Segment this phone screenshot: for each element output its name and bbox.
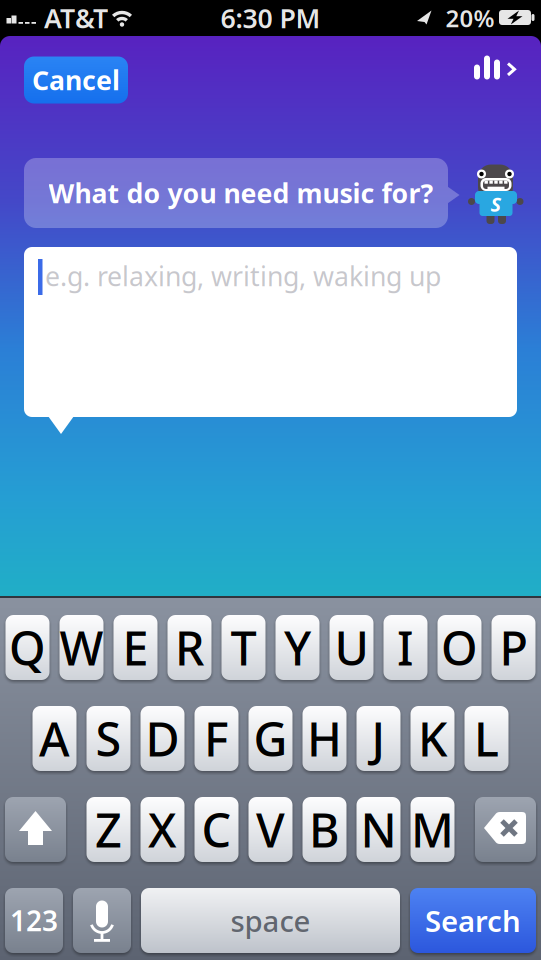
staticText: S: [490, 191, 501, 217]
staticText: D: [145, 707, 179, 769]
button[interactable]: Dictate: [73, 888, 131, 953]
button[interactable]: U: [329, 615, 373, 680]
staticText: space: [230, 901, 310, 940]
button[interactable]: Search: [410, 888, 536, 953]
button[interactable]: D: [140, 706, 184, 771]
button[interactable]: e.g. relaxing, writing, waking up: [24, 247, 517, 435]
staticText: K: [418, 707, 447, 769]
staticText: S: [95, 707, 121, 769]
button[interactable]: F: [194, 706, 238, 771]
staticText: N: [360, 798, 396, 860]
staticText: Search: [425, 901, 521, 940]
button[interactable]: E: [113, 615, 157, 680]
button[interactable]: Delete: [475, 797, 536, 862]
staticText: A: [39, 707, 70, 769]
staticText: J: [371, 707, 385, 769]
button[interactable]: Stats: [474, 55, 516, 80]
button[interactable]: V: [248, 797, 292, 862]
staticText: 6:30 PM: [220, 0, 320, 36]
button[interactable]: W: [59, 615, 103, 680]
button[interactable]: Cancel: [24, 56, 128, 103]
staticText: X: [148, 798, 177, 860]
staticText: e.g. relaxing, writing, waking up: [45, 258, 441, 294]
staticText: L: [474, 707, 499, 769]
staticText: W: [59, 616, 103, 678]
staticText: T: [230, 616, 256, 678]
staticText: O: [441, 616, 478, 678]
staticText: What do you need music for?: [48, 175, 433, 211]
button[interactable]: I: [383, 615, 427, 680]
staticText: Cancel: [32, 62, 120, 98]
staticText: 123: [10, 902, 58, 939]
button[interactable]: B: [302, 797, 346, 862]
staticText: G: [253, 707, 287, 769]
staticText: I: [397, 616, 414, 678]
staticText: C: [201, 798, 231, 860]
button[interactable]: C: [194, 797, 238, 862]
button[interactable]: P: [491, 615, 535, 680]
staticText: H: [307, 707, 342, 769]
button[interactable]: O: [437, 615, 481, 680]
button[interactable]: Shift: [5, 797, 66, 862]
button[interactable]: Y: [275, 615, 319, 680]
button[interactable]: M: [410, 797, 454, 862]
staticText: U: [334, 616, 368, 678]
staticText: E: [122, 616, 148, 678]
button[interactable]: Z: [86, 797, 130, 862]
button[interactable]: L: [464, 706, 508, 771]
staticText: P: [499, 616, 527, 678]
staticText: Q: [9, 616, 46, 678]
button[interactable]: J: [356, 706, 400, 771]
button[interactable]: G: [248, 706, 292, 771]
staticText: Y: [284, 616, 311, 678]
staticText: B: [309, 798, 340, 860]
staticText: F: [204, 707, 229, 769]
staticText: AT&T: [44, 0, 108, 36]
staticText: V: [256, 798, 285, 860]
button[interactable]: A: [32, 706, 76, 771]
staticText: R: [175, 616, 204, 678]
button[interactable]: R: [167, 615, 211, 680]
button[interactable]: N: [356, 797, 400, 862]
button[interactable]: X: [140, 797, 184, 862]
button[interactable]: Q: [5, 615, 49, 680]
button[interactable]: space: [141, 888, 400, 953]
staticText: M: [411, 798, 454, 860]
button[interactable]: 123: [5, 888, 63, 953]
button[interactable]: S: [86, 706, 130, 771]
button[interactable]: K: [410, 706, 454, 771]
staticText: 20%: [445, 2, 494, 34]
staticText: Z: [95, 798, 122, 860]
button[interactable]: H: [302, 706, 346, 771]
button[interactable]: T: [221, 615, 265, 680]
